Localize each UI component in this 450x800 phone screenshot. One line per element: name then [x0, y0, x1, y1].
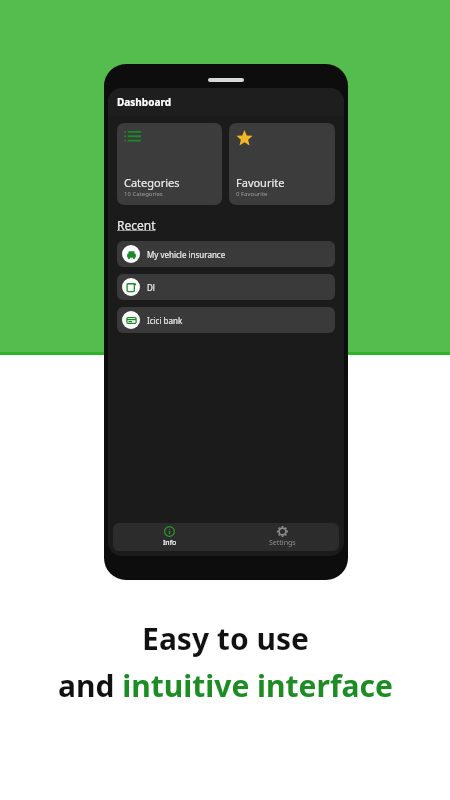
button[interactable]: Settings — [226, 523, 339, 551]
staticText: and intuitive interface — [58, 665, 393, 706]
button[interactable]: Info — [113, 523, 226, 551]
staticText: 0 Favourite — [236, 190, 268, 198]
button[interactable]: Favourite — [229, 123, 335, 205]
button[interactable]: My vehicle insurance — [117, 241, 335, 267]
button[interactable]: Dl — [117, 274, 335, 300]
button[interactable]: Icici bank — [117, 307, 335, 333]
staticText: Easy to use — [142, 618, 309, 659]
staticText: Settings — [269, 538, 296, 548]
staticText: Recent — [117, 217, 156, 233]
staticText: Dl — [147, 282, 155, 293]
staticText: 10 Categories — [124, 190, 163, 198]
staticText: Info — [163, 538, 177, 548]
staticText: Categories — [124, 175, 180, 190]
staticText: Icici bank — [147, 315, 183, 326]
staticText: Favourite — [236, 175, 285, 190]
staticText: Dashboard — [117, 95, 171, 109]
staticText: My vehicle insurance — [147, 249, 226, 260]
button[interactable]: Categories — [117, 123, 222, 205]
